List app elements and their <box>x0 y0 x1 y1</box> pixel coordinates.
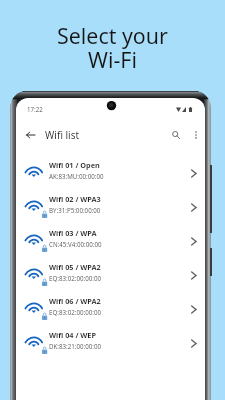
staticText: Wifi 06 / WPA2 <box>49 296 101 306</box>
button[interactable]: Wifi 06 / WPA2 <box>16 289 205 323</box>
staticText: Wifi 05 / WPA2 <box>49 262 101 272</box>
staticText: BY:31:P5:00:00:00 <box>49 206 101 214</box>
button[interactable]: More options <box>188 127 203 142</box>
staticText: CN:45:V4:00:00:00 <box>49 240 102 248</box>
button[interactable]: Wifi 03 / WPA <box>16 221 205 255</box>
button[interactable]: Wifi 04 / WEP <box>16 323 205 357</box>
staticText: Wifi list <box>45 128 80 142</box>
staticText: EQ:83:02:00:00:00 <box>49 274 101 282</box>
button[interactable]: Wifi 02 / WPA3 <box>16 187 205 221</box>
staticText: Select your <box>57 21 168 50</box>
button[interactable]: Search <box>168 127 183 142</box>
staticText: Wifi 04 / WEP <box>49 330 96 340</box>
staticText: Wifi 03 / WPA <box>49 228 97 238</box>
staticText: DK:83:21:00:00:00 <box>49 342 102 350</box>
staticText: Wifi 02 / WPA3 <box>49 194 101 204</box>
button[interactable]: Wifi 01 / Open <box>16 153 205 187</box>
staticText: 17:22 <box>27 105 43 113</box>
staticText: AK:83:MU:00:00:00 <box>49 172 104 180</box>
staticText: Wi-Fi <box>88 45 137 74</box>
button[interactable]: Wifi 05 / WPA2 <box>16 255 205 289</box>
staticText: EQ:83:02:00:00:00 <box>49 308 101 316</box>
button[interactable]: Back <box>23 127 38 142</box>
staticText: Wifi 01 / Open <box>49 160 100 170</box>
